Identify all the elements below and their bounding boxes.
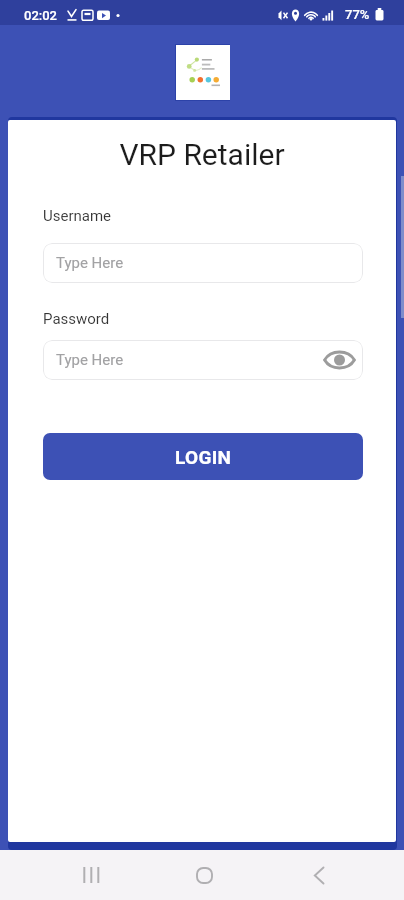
button[interactable]: Home	[180, 850, 228, 900]
staticText: Type Here	[56, 351, 124, 369]
button[interactable]: Show password	[323, 344, 355, 376]
staticText: 77%	[345, 7, 370, 22]
button[interactable]: LOGIN	[43, 433, 363, 480]
staticText: VRP Retailer	[8, 137, 396, 172]
staticText: LOGIN	[175, 446, 232, 468]
button[interactable]: Type Here	[43, 243, 363, 283]
button[interactable]: Back	[294, 850, 343, 900]
staticText: Password	[43, 310, 110, 328]
staticText: Type Here	[56, 254, 124, 272]
staticText: Username	[43, 207, 112, 225]
staticText: 02:02	[24, 8, 58, 23]
button[interactable]: Type Here	[43, 340, 363, 380]
button[interactable]: Recents	[66, 850, 115, 900]
